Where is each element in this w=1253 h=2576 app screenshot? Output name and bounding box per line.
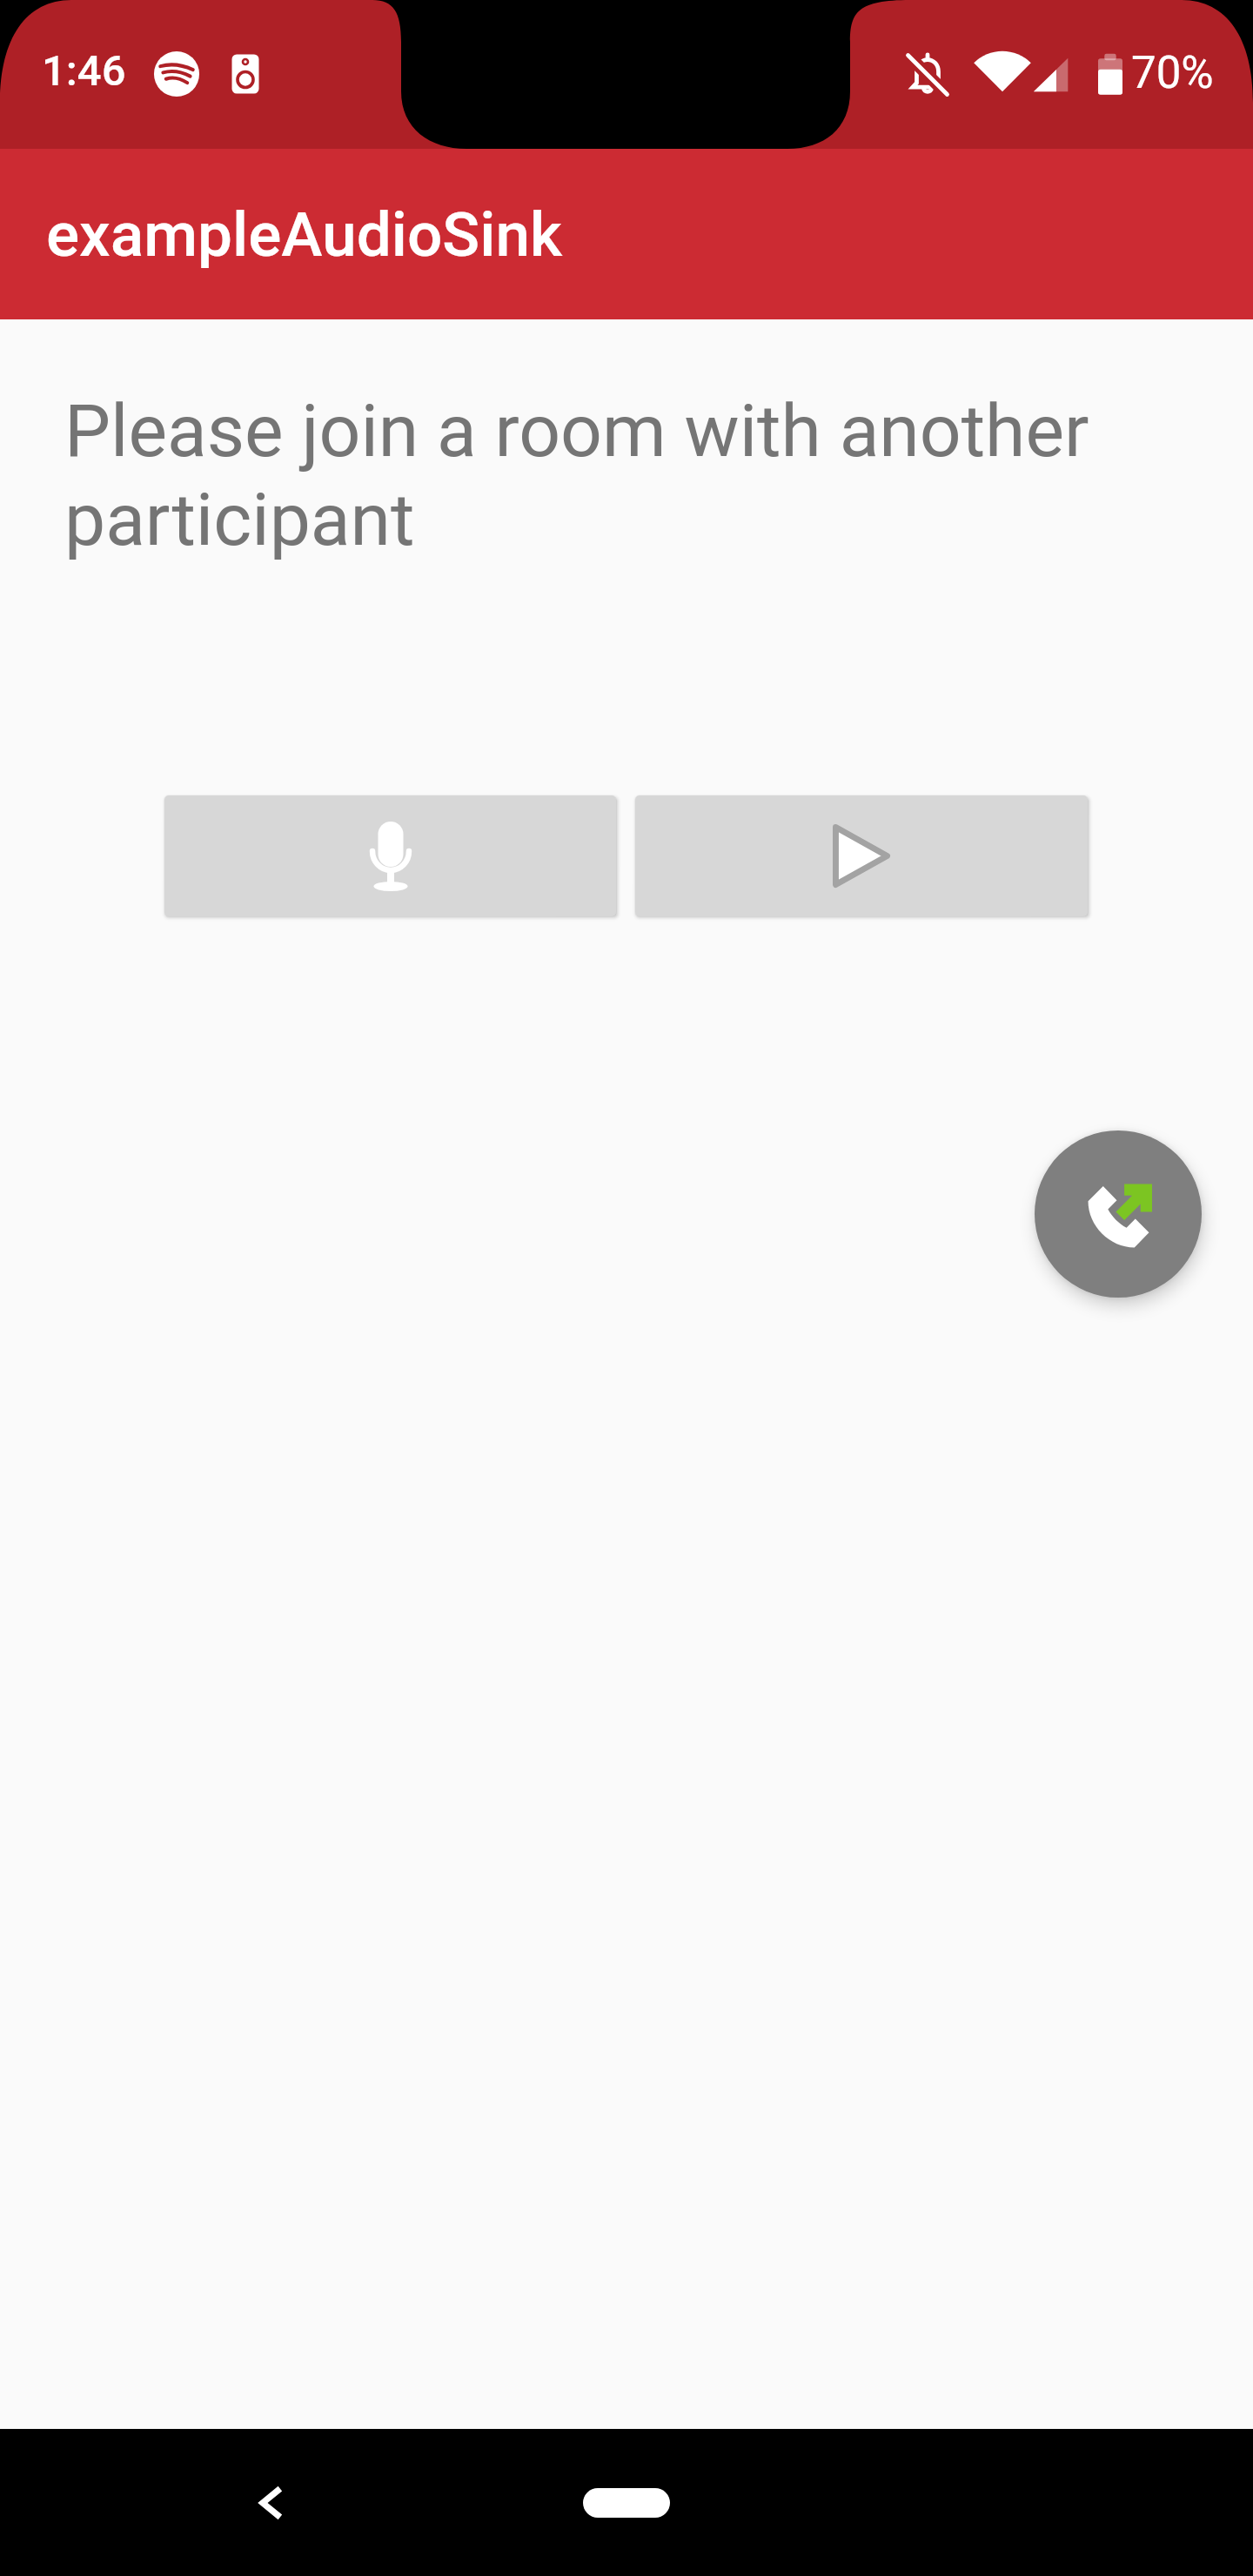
- staticText: 1:46: [42, 46, 126, 96]
- button[interactable]: Play: [635, 795, 1088, 916]
- staticText: exampleAudioSink: [46, 198, 562, 271]
- button[interactable]: Back: [218, 2451, 322, 2555]
- staticText: Please join a room with another particip…: [64, 388, 1218, 562]
- button[interactable]: Make call: [1035, 1130, 1202, 1298]
- button[interactable]: Home: [539, 2459, 714, 2546]
- staticText: 70%: [1131, 47, 1214, 99]
- button[interactable]: Microphone: [164, 795, 616, 916]
